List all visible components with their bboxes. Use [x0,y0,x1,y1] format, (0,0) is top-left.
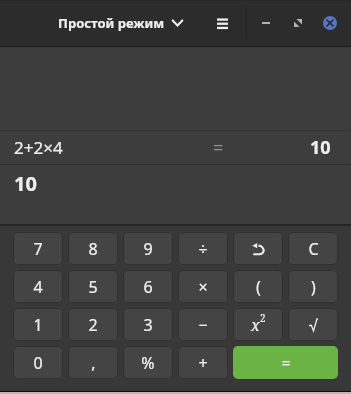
staticText: − [198,314,208,336]
staticText: % [141,352,155,374]
staticText: 9 [143,238,153,260]
staticText: 6 [143,276,153,298]
staticText: ) [311,276,316,298]
staticText: x [251,314,260,336]
button[interactable]: + [178,346,228,379]
staticText: ( [256,276,261,298]
button[interactable]: Main menu [210,11,234,35]
button[interactable]: Minimize [254,11,278,35]
button[interactable]: Maximize [286,11,310,35]
button[interactable]: ÷ [178,232,228,265]
staticText: 4 [33,276,43,298]
staticText: 2 [88,314,98,336]
button[interactable]: Close [318,11,342,35]
staticText: 8 [88,238,98,260]
button[interactable]: 1 [13,308,63,341]
staticText: , [91,352,96,374]
staticText: 10 [14,170,37,197]
button[interactable]: 2+2×4 [0,131,351,164]
button[interactable]: 5 [68,270,118,303]
staticText: Простой режим [58,14,165,32]
staticText: 5 [88,276,98,298]
button[interactable]: 9 [123,232,173,265]
button[interactable]: 0 [13,346,63,379]
staticText: = [213,135,224,160]
button[interactable]: 4 [13,270,63,303]
button[interactable]: Square root [288,308,338,341]
staticText: + [198,352,208,374]
staticText: 3 [143,314,153,336]
staticText: 1 [33,314,43,336]
button[interactable]: % [123,346,173,379]
button[interactable]: × [178,270,228,303]
staticText: ÷ [198,238,208,260]
staticText: = [281,352,291,374]
staticText: 2+2×4 [14,136,63,159]
button[interactable]: 3 [123,308,173,341]
staticText: 10 [310,135,331,160]
button[interactable]: Undo [233,232,283,265]
button[interactable]: C [288,232,338,265]
staticText: × [198,276,208,298]
button[interactable]: 8 [68,232,118,265]
button[interactable]: Простой режим [58,11,183,35]
button[interactable]: , [68,346,118,379]
button[interactable]: 2 [68,308,118,341]
staticText: 7 [33,238,43,260]
button[interactable]: Square [233,308,283,341]
staticText: 2 [260,311,266,325]
button[interactable]: = [233,346,338,379]
button[interactable]: ) [288,270,338,303]
staticText: C [308,238,319,260]
button[interactable]: 7 [13,232,63,265]
button[interactable]: 6 [123,270,173,303]
staticText: 0 [33,352,43,374]
button[interactable]: ( [233,270,283,303]
button[interactable]: − [178,308,228,341]
